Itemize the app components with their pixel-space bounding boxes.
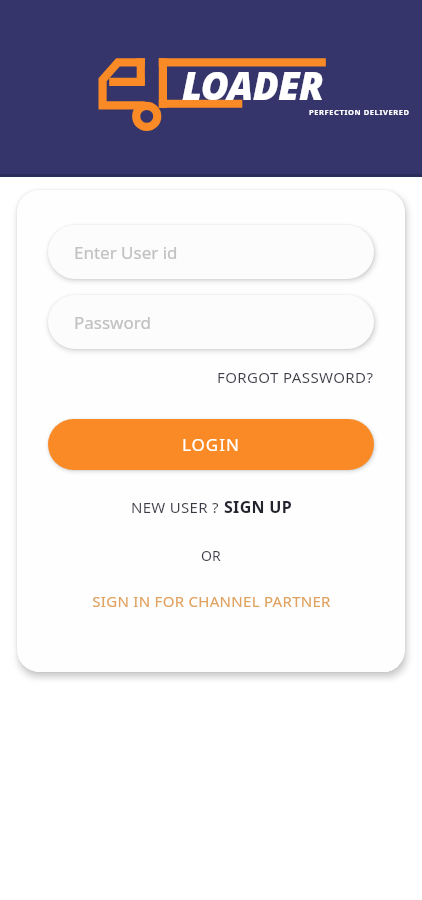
staticText: Enter User id [74,241,178,264]
staticText: LOGIN [182,433,240,456]
button[interactable]: LOGIN [48,419,374,470]
button[interactable]: NEW USER ? [48,496,374,518]
staticText: NEW USER ? [131,497,224,517]
staticText: Password [74,311,151,334]
button[interactable]: FORGOT PASSWORD? [48,367,374,387]
button[interactable]: Password [48,295,374,349]
button[interactable]: Enter User id [48,225,374,279]
staticText: PERFECTION DELIVERED [309,107,410,117]
staticText: FORGOT PASSWORD? [217,367,374,387]
staticText: SIGN UP [224,496,292,518]
staticText: OR [201,546,221,565]
button[interactable]: SIGN IN FOR CHANNEL PARTNER [48,591,374,611]
staticText: SIGN IN FOR CHANNEL PARTNER [92,591,331,611]
staticText: LOADER [182,59,324,111]
